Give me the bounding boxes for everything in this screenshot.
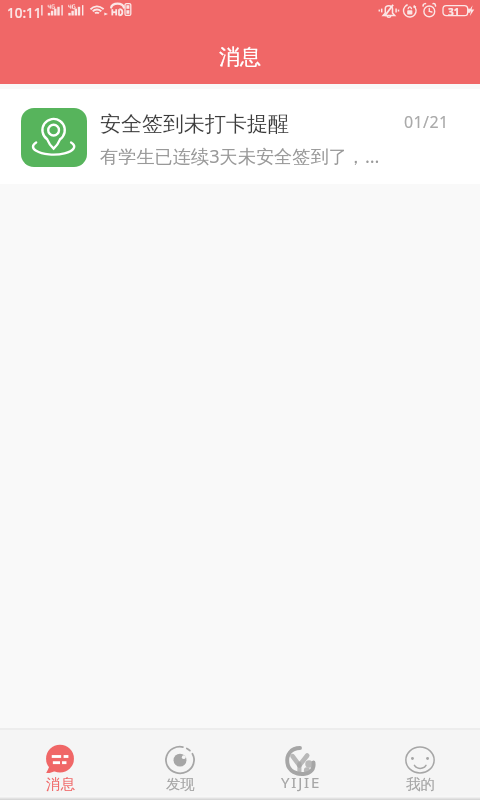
button[interactable]: 消息 xyxy=(0,730,120,800)
staticText: 我的 xyxy=(406,775,435,793)
staticText: 10:11 xyxy=(7,4,42,22)
button[interactable]: YIJIE xyxy=(240,730,360,800)
staticText: 消息 xyxy=(219,44,261,70)
staticText: 安全签到未打卡提醒 xyxy=(100,111,289,137)
staticText: 31 xyxy=(448,5,460,19)
staticText: 发现 xyxy=(166,775,195,793)
button[interactable]: 发现 xyxy=(120,730,240,800)
staticText: YIJIE xyxy=(281,772,322,792)
staticText: 有学生已连续3天未安全签到了，… xyxy=(100,144,380,169)
staticText: 消息 xyxy=(46,775,75,793)
button[interactable]: 我的 xyxy=(360,730,480,800)
staticText: 01/21 xyxy=(404,111,449,133)
button[interactable]: 安全签到未打卡提醒 xyxy=(0,89,480,184)
